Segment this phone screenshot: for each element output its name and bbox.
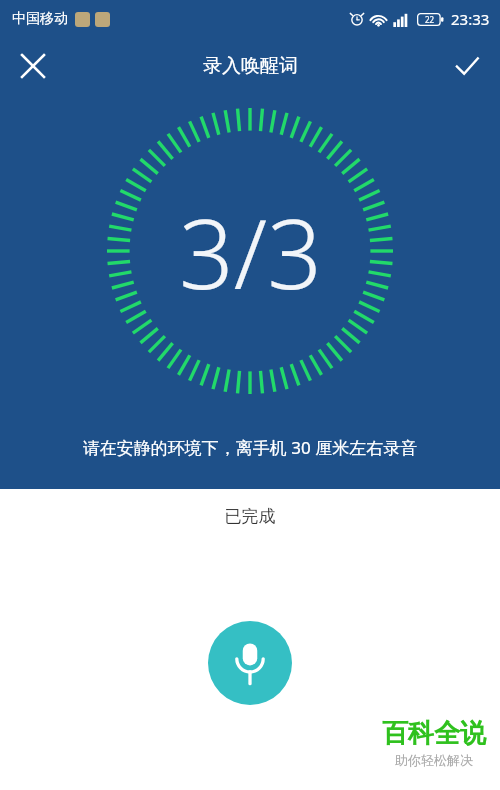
staticText: 录入唤醒词 xyxy=(203,54,298,78)
staticText: 3/3 xyxy=(179,186,322,317)
button[interactable]: Confirm xyxy=(444,43,490,89)
staticText: 中国移动 xyxy=(12,10,68,28)
staticText: 百科全说 xyxy=(382,717,486,750)
button[interactable]: Close xyxy=(10,43,56,89)
staticText: 已完成 xyxy=(0,506,500,527)
staticText: 23:33 xyxy=(451,9,490,29)
button[interactable]: Record xyxy=(208,621,292,705)
staticText: 22 xyxy=(425,14,435,25)
staticText: 助你轻松解决 xyxy=(395,752,473,768)
staticText: 请在安静的环境下，离手机 30 厘米左右录音 xyxy=(0,436,500,459)
